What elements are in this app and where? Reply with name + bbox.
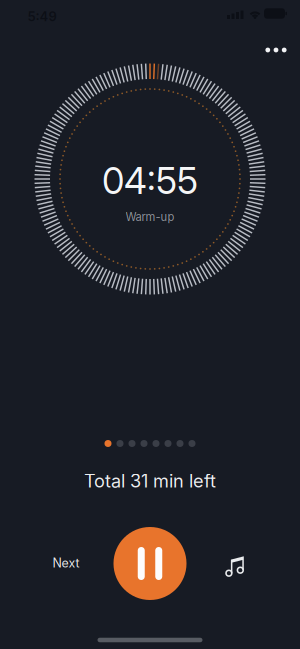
- staticText: 04:55: [102, 159, 198, 203]
- button[interactable]: Pause: [113, 527, 186, 600]
- button[interactable]: Music: [224, 553, 245, 578]
- button[interactable]: Next: [44, 548, 88, 578]
- staticText: 5:49: [27, 9, 56, 24]
- button[interactable]: More options: [262, 38, 290, 62]
- staticText: Next: [52, 555, 79, 570]
- staticText: Warm-up: [125, 210, 174, 224]
- staticText: Total 31 min left: [84, 470, 216, 492]
